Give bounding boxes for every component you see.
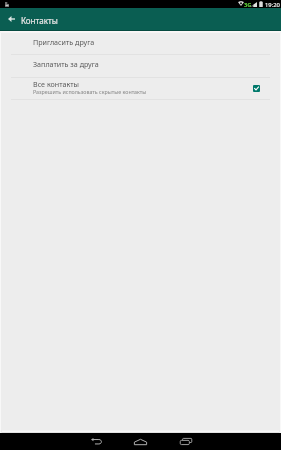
- staticText: Все контакты: [33, 79, 79, 89]
- button[interactable]: Home: [120, 433, 160, 450]
- staticText: Заплатить за друга: [33, 59, 99, 69]
- button[interactable]: Все контакты: [0, 78, 281, 100]
- button[interactable]: Recent apps: [166, 433, 206, 450]
- staticText: Контакты: [21, 15, 58, 26]
- button[interactable]: Заплатить за друга: [0, 55, 281, 77]
- staticText: Пригласить друга: [33, 37, 95, 47]
- button[interactable]: Back: [0, 8, 22, 30]
- staticText: 19:20: [265, 1, 280, 9]
- button[interactable]: Back: [76, 433, 116, 450]
- staticText: 3G: [244, 1, 252, 9]
- staticText: Разрешить использовать скрытые контакты: [33, 88, 147, 95]
- button[interactable]: Пригласить друга: [0, 30, 281, 54]
- other: All contacts enabled: [248, 83, 265, 93]
